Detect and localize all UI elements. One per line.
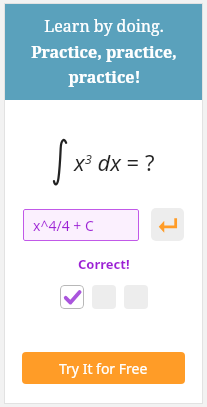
staticText: Try It for Free <box>59 359 148 378</box>
button[interactable]: Step 1 complete <box>60 285 84 309</box>
staticText: x^4/4 + C <box>33 216 94 235</box>
button[interactable]: Enter answer <box>151 208 184 241</box>
button[interactable]: x^4/4 + C <box>23 209 139 241</box>
staticText: Correct! <box>78 255 130 273</box>
staticText: x3 dx = ? <box>74 147 155 177</box>
staticText: Practice, practice, <box>31 41 177 63</box>
staticText: Learn by doing. <box>44 15 164 37</box>
button[interactable]: Try It for Free <box>22 352 185 384</box>
staticText: practice! <box>68 66 141 88</box>
